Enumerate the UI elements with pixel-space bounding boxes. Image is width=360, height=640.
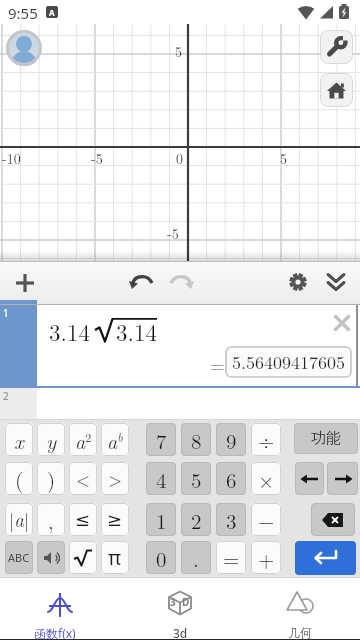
staticText: 2 [3,389,9,403]
button[interactable]: 1 [146,503,176,536]
button[interactable] [37,541,65,574]
button[interactable] [327,462,358,495]
button[interactable]: ≤ [69,503,97,536]
button[interactable]: ÷ [251,423,281,456]
staticText: = [210,351,225,378]
staticText: 几何 [288,625,312,640]
staticText: 0 [176,148,183,168]
button[interactable]: ab [101,423,129,456]
button[interactable] [295,541,356,575]
button[interactable]: 0 [146,541,176,574]
button[interactable] [295,462,324,495]
button[interactable]: 9 [216,423,246,456]
button[interactable] [328,309,356,337]
staticText: 1 [3,306,9,320]
staticText: 5 [175,41,182,61]
staticText: 3.14 [116,315,157,348]
staticText: 3 [170,595,176,609]
button[interactable]: 4 [146,462,176,495]
staticText: 2 [191,505,202,535]
button[interactable]: 5 [181,462,211,495]
button[interactable]: 几何 [260,578,340,640]
button[interactable]: 1 [0,305,360,386]
button[interactable]: = [216,541,246,574]
button[interactable] [311,503,355,536]
button[interactable]: |a| [5,503,33,536]
button[interactable]: . [181,541,211,574]
staticText: ≤ [75,509,91,530]
staticText: , [48,506,54,534]
button[interactable] [6,30,42,66]
staticText: 5 [191,464,202,494]
button[interactable] [69,541,97,574]
button[interactable]: 5.56409417605 [225,346,352,378]
button[interactable]: 3 [140,578,220,640]
button[interactable] [320,30,353,64]
staticText: ) [47,464,56,494]
button[interactable]: x [5,423,33,456]
staticText: 5 [280,148,287,168]
button[interactable]: y [37,423,65,456]
staticText: -10 [2,148,21,168]
staticText: 4 [156,464,167,494]
button[interactable]: 2 [0,388,360,419]
staticText: × [258,464,275,494]
staticText: D [182,595,190,609]
staticText: = [223,543,240,573]
button[interactable]: < [69,462,97,495]
staticText: y [46,425,57,455]
button[interactable]: 2 [181,503,211,536]
staticText: π [108,544,122,571]
staticText: − [258,505,275,535]
button[interactable]: 5 [0,24,360,261]
staticText: a2 [75,426,92,454]
staticText: ≥ [107,509,123,530]
staticText: 5.56409417605 [232,349,346,375]
button[interactable]: 7 [146,423,176,456]
staticText: 功能 [311,429,341,448]
staticText: 函数f(x) [34,625,76,640]
button[interactable]: ) [37,462,65,495]
button[interactable]: a2 [69,423,97,456]
staticText: 6 [226,464,237,494]
button[interactable]: > [101,462,129,495]
button[interactable]: × [251,462,281,495]
staticText: 9 [226,425,237,455]
staticText: 0 [156,543,167,573]
staticText: ÷ [258,425,275,455]
button[interactable]: ≥ [101,503,129,536]
staticText: A [49,7,55,18]
staticText: 3 [226,505,237,535]
button[interactable]: , [37,503,65,536]
staticText: + [258,543,275,573]
button[interactable]: 8 [181,423,211,456]
staticText: 3.14 [49,315,90,348]
button[interactable]: 函数f(x) [20,578,100,640]
staticText: -5 [167,223,179,243]
staticText: 1 [156,505,167,535]
staticText: < [76,466,91,492]
button[interactable]: 3 [216,503,246,536]
staticText: x [14,425,24,455]
staticText: |a| [9,506,30,533]
staticText: > [108,466,123,492]
button[interactable]: 6 [216,462,246,495]
staticText: 7 [156,425,167,455]
button[interactable] [320,73,353,107]
button[interactable]: + [251,541,281,574]
staticText: ( [15,464,24,494]
staticText: ABC [8,550,30,565]
staticText: 9:55 [8,3,38,23]
button[interactable]: ABC [5,541,33,574]
staticText: 8 [191,425,202,455]
button[interactable]: π [101,541,129,574]
button[interactable]: ( [5,462,33,495]
button[interactable]: − [251,503,281,536]
staticText: -5 [91,148,103,168]
staticText: 3d [173,625,188,640]
button[interactable]: 功能 [294,423,358,454]
staticText: . [193,543,199,573]
staticText: ab [107,426,123,454]
